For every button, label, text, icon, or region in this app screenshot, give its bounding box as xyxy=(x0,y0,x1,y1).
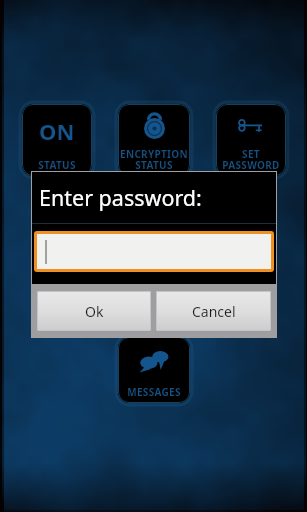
staticText: ON xyxy=(39,116,75,146)
staticText: MESSAGES xyxy=(127,385,181,399)
staticText: Ok xyxy=(85,302,104,321)
staticText: Enter password: xyxy=(39,183,202,212)
staticText: SET PASSWORD xyxy=(222,147,280,172)
staticText: Cancel xyxy=(192,302,236,321)
button[interactable]: MESSAGES xyxy=(118,337,190,403)
button[interactable]: Cancel xyxy=(156,291,271,331)
button[interactable]: ENCRYPTION STATUS xyxy=(118,104,190,176)
button[interactable]: Ok xyxy=(37,291,151,331)
staticText: ENCRYPTION STATUS xyxy=(120,147,188,172)
button[interactable]: ON xyxy=(22,104,92,176)
button[interactable]: SET PASSWORD xyxy=(216,104,286,176)
staticText: STATUS xyxy=(38,158,76,172)
button[interactable] xyxy=(37,234,271,269)
